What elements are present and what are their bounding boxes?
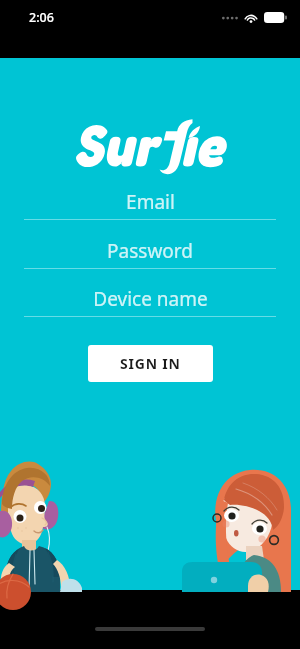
button[interactable]: SIGN IN [88, 345, 213, 382]
staticText: SIGN IN [120, 354, 181, 373]
staticText: Device name [93, 286, 208, 312]
staticText: 2:06 [29, 9, 54, 26]
staticText: Email [126, 189, 175, 215]
button[interactable]: Device name [24, 282, 276, 317]
staticText: Password [107, 238, 193, 264]
button[interactable]: Email [24, 185, 276, 220]
button[interactable]: Password [24, 234, 276, 269]
